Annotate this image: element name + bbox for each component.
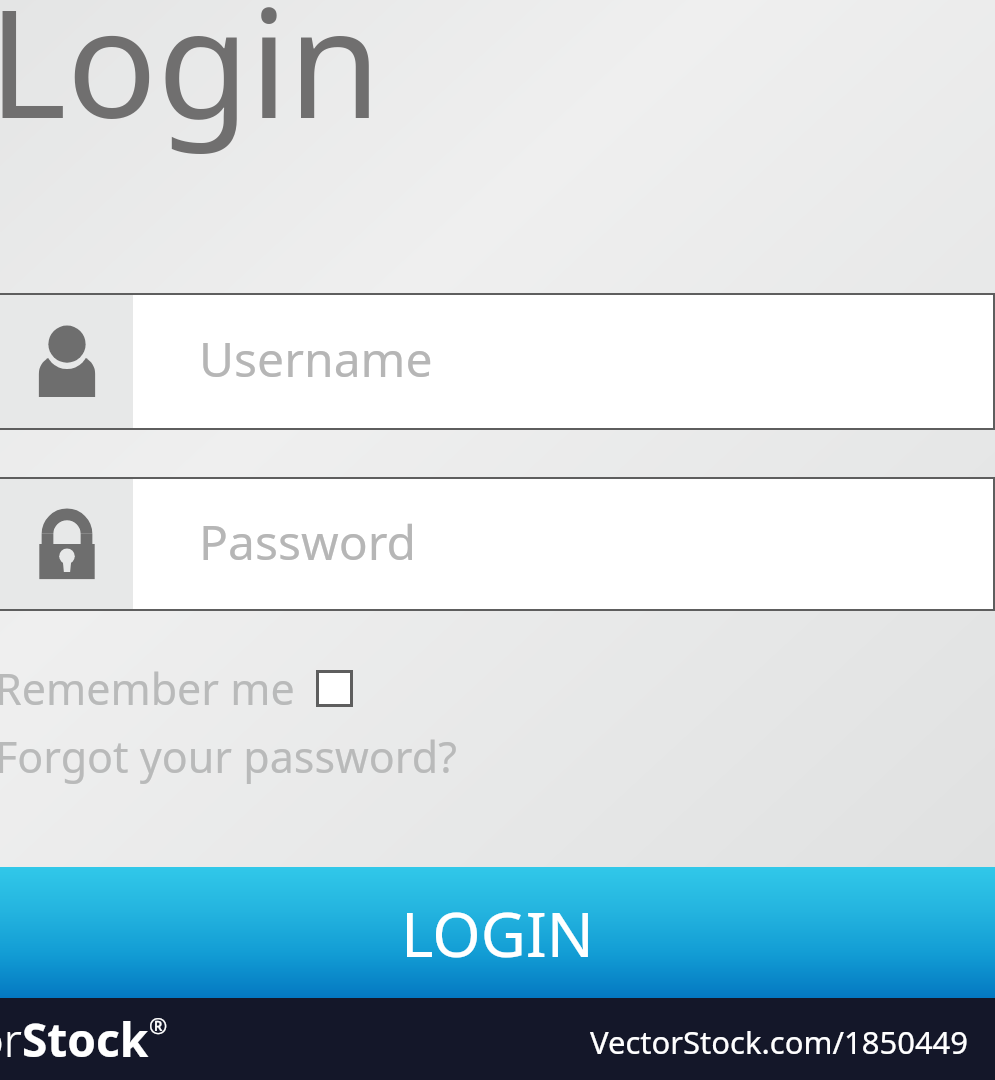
button[interactable]: Remember me bbox=[0, 659, 361, 718]
staticText: LOGIN bbox=[401, 891, 594, 975]
button[interactable]: Password bbox=[0, 477, 995, 611]
staticText: VectorStock.com/1850449 bbox=[590, 1021, 969, 1063]
button[interactable]: Username bbox=[0, 293, 995, 430]
staticText: Username bbox=[199, 326, 433, 391]
button[interactable]: LOGIN bbox=[0, 867, 995, 998]
staticText: ® bbox=[149, 1010, 168, 1040]
staticText: Vector bbox=[0, 1008, 22, 1071]
staticText: Login bbox=[0, 0, 382, 162]
staticText: Password bbox=[199, 509, 417, 574]
other: Username bbox=[29, 324, 105, 400]
button[interactable]: Forgot your password? bbox=[0, 727, 457, 786]
staticText: Forgot your password? bbox=[0, 727, 457, 786]
staticText: Remember me bbox=[0, 659, 295, 718]
staticText: Stock bbox=[22, 1008, 149, 1071]
other: Password bbox=[28, 505, 106, 583]
